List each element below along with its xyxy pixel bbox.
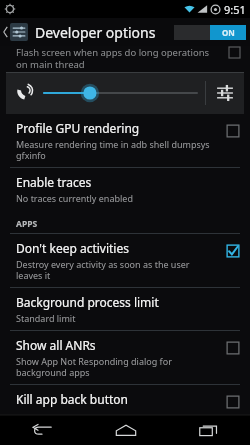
staticText: APPS: [16, 218, 38, 230]
staticText: Don't keep activities: [16, 240, 129, 256]
button[interactable]: Don't keep activities checkbox: [226, 244, 240, 258]
button[interactable]: Profile GPU rendering: [0, 114, 250, 167]
staticText: Show all ANRs: [16, 337, 96, 353]
button[interactable]: Show all ANRs: [0, 331, 250, 384]
staticText: Background process limit: [16, 294, 159, 310]
button[interactable]: Recent apps: [167, 415, 250, 445]
button[interactable]: Profile GPU rendering checkbox: [226, 124, 240, 138]
button[interactable]: Navigate up: [0, 18, 28, 46]
staticText: Enable traces: [16, 174, 92, 190]
button[interactable]: Don't keep activities: [0, 234, 250, 287]
button[interactable]: Kill app back button: [0, 385, 250, 415]
staticText: Measure rendering time in adb shell dump…: [16, 138, 210, 161]
staticText: Show App Not Responding dialog for backg…: [16, 355, 172, 378]
button[interactable]: Ringer volume: [14, 82, 36, 104]
staticText: Destroy every activity as soon as the us…: [16, 258, 190, 281]
button[interactable]: Flash screen when apps do long operation…: [0, 46, 250, 72]
staticText: Flash screen when apps do long operation…: [16, 46, 210, 71]
button[interactable]: Kill app back button checkbox: [226, 395, 240, 409]
button[interactable]: Volume slider: [44, 82, 197, 104]
staticText: Profile GPU rendering: [16, 120, 140, 136]
staticText: Developer options: [35, 23, 156, 42]
button[interactable]: Show all ANRs checkbox: [226, 341, 240, 355]
button[interactable]: Background process limit: [0, 288, 250, 330]
button[interactable]: Home: [84, 415, 167, 445]
button[interactable]: Expand volume settings: [214, 82, 236, 104]
staticText: Kill app back button: [16, 391, 128, 407]
button[interactable]: Back: [0, 415, 84, 445]
button[interactable]: Developer options on: [174, 25, 246, 40]
staticText: 9:51: [224, 2, 246, 17]
staticText: No traces currently enabled: [16, 192, 133, 204]
staticText: Standard limit: [16, 312, 76, 324]
button[interactable]: Enable traces: [0, 168, 250, 210]
staticText: ON: [222, 27, 235, 38]
